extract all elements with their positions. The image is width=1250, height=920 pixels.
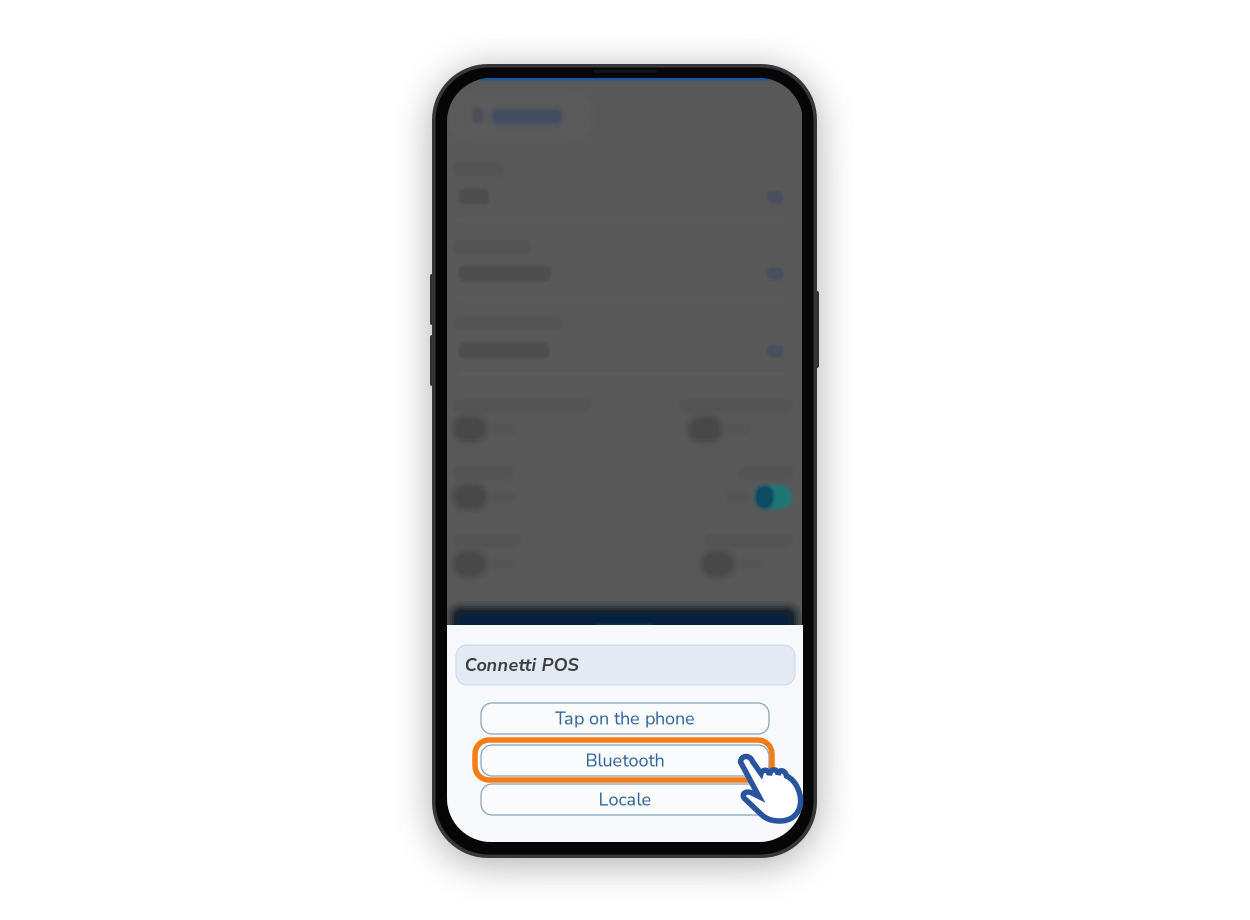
button[interactable]: Locale: [481, 784, 769, 815]
staticText: Tap on the phone: [555, 706, 695, 731]
staticText: Connetti POS: [464, 653, 578, 677]
button[interactable]: Bluetooth: [481, 745, 769, 776]
button[interactable]: Tap on the phone: [481, 703, 769, 734]
staticText: Locale: [598, 787, 651, 812]
staticText: Bluetooth: [585, 748, 664, 773]
